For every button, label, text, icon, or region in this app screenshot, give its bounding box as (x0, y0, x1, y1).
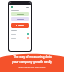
button[interactable] (11, 23, 29, 28)
button[interactable] (11, 12, 29, 16)
button[interactable] (11, 33, 29, 35)
button[interactable]: start using the app today (17, 66, 47, 69)
button[interactable] (11, 37, 29, 39)
staticText: The way of measuring data (13, 55, 52, 59)
staticText: start using the app today (18, 66, 46, 69)
button[interactable] (11, 17, 29, 21)
staticText: your company growth easily (12, 60, 52, 64)
